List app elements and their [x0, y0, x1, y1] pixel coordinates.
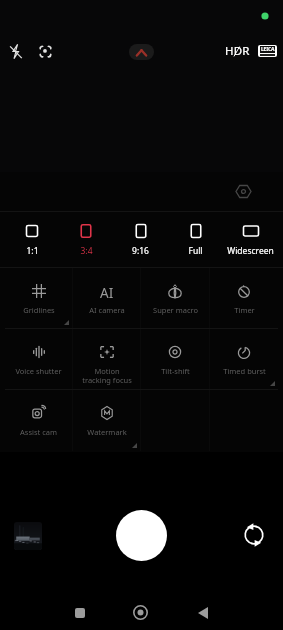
- button[interactable]: 3:4: [59, 212, 113, 267]
- button[interactable]: AI: [73, 268, 140, 328]
- staticText: 1:1: [26, 245, 39, 257]
- button[interactable]: Timer: [210, 268, 278, 328]
- staticText: Assist cam: [20, 427, 57, 437]
- button[interactable]: Back: [185, 595, 220, 630]
- button[interactable]: 9:16: [113, 212, 168, 267]
- staticText: Timer: [234, 305, 255, 315]
- button[interactable]: Take photo: [116, 510, 167, 561]
- staticText: Watermark: [87, 427, 127, 437]
- button[interactable]: Gridlines: [5, 268, 72, 328]
- button[interactable]: Camera settings: [230, 178, 257, 205]
- button[interactable]: Full: [168, 212, 223, 267]
- button[interactable]: Assist cam: [5, 390, 72, 451]
- button[interactable]: 1:1: [5, 212, 59, 267]
- staticText: AI: [100, 284, 114, 298]
- staticText: 9:16: [132, 245, 149, 257]
- staticText: HDR: [225, 43, 250, 59]
- button[interactable]: Timed burst: [210, 329, 278, 389]
- button[interactable]: HDR off: [222, 40, 253, 62]
- button[interactable]: Open gallery: [14, 522, 42, 550]
- button[interactable]: Watermark: [73, 390, 140, 451]
- button[interactable]: AI scene detection: [31, 37, 59, 65]
- button[interactable]: Leica authentic mode: [258, 45, 277, 57]
- staticText: Gridlines: [23, 305, 55, 315]
- staticText: AI camera: [89, 305, 125, 315]
- staticText: Motion tracking focus: [82, 366, 132, 385]
- button[interactable]: Flash off: [1, 37, 29, 65]
- staticText: 3:4: [80, 245, 93, 257]
- button[interactable]: Motion tracking focus: [73, 329, 140, 389]
- button[interactable]: Voice shutter: [5, 329, 72, 389]
- button[interactable]: Switch camera: [240, 521, 268, 549]
- button[interactable]: Super macro: [141, 268, 209, 328]
- staticText: Widescreen: [227, 245, 274, 257]
- button[interactable]: Show more options: [129, 44, 154, 60]
- button[interactable]: Home: [123, 595, 158, 630]
- staticText: Voice shutter: [15, 366, 62, 376]
- button[interactable]: Recent apps: [62, 595, 97, 630]
- button[interactable]: Widescreen: [223, 212, 278, 267]
- staticText: Tilt-shift: [161, 366, 190, 376]
- staticText: Full: [188, 245, 203, 257]
- staticText: Super macro: [153, 305, 198, 315]
- button[interactable]: Tilt-shift: [141, 329, 209, 389]
- staticText: LEICA: [261, 46, 275, 53]
- staticText: Timed burst: [223, 366, 266, 376]
